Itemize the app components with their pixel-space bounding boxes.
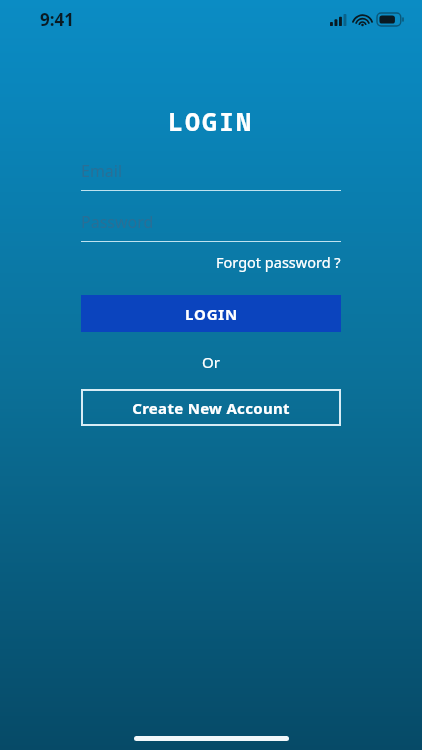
staticText: Password bbox=[81, 211, 154, 233]
button[interactable]: LOGIN bbox=[81, 295, 341, 332]
staticText: Email bbox=[81, 160, 123, 182]
button[interactable]: Forgot password ? bbox=[216, 249, 341, 275]
button[interactable]: Password bbox=[81, 211, 341, 242]
staticText: LOGIN bbox=[168, 104, 254, 138]
staticText: 9:41 bbox=[40, 8, 74, 31]
button[interactable]: Email bbox=[81, 160, 341, 191]
staticText: Create New Account bbox=[132, 398, 290, 418]
button[interactable]: Create New Account bbox=[81, 389, 341, 426]
staticText: Or bbox=[202, 352, 220, 372]
staticText: LOGIN bbox=[185, 304, 238, 324]
